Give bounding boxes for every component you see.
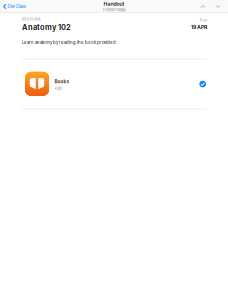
staticText: 19 APR bbox=[191, 24, 207, 30]
staticText: Due bbox=[200, 18, 207, 22]
staticText: Handout bbox=[103, 1, 124, 7]
staticText: Anatomy 102 bbox=[22, 23, 71, 32]
button[interactable]: Dev Class bbox=[0, 1, 28, 12]
staticText: DEV CLASS bbox=[22, 18, 41, 21]
button[interactable]: Previous attachment bbox=[197, 1, 208, 12]
button[interactable]: Books bbox=[0, 60, 228, 109]
staticText: Books bbox=[55, 79, 70, 84]
button[interactable]: Next attachment bbox=[212, 1, 223, 12]
staticText: Posted Today bbox=[102, 7, 125, 12]
staticText: App bbox=[55, 86, 62, 91]
staticText: Dev Class bbox=[7, 4, 25, 9]
staticText: Learn anatomy by reading the book provid… bbox=[22, 40, 116, 45]
